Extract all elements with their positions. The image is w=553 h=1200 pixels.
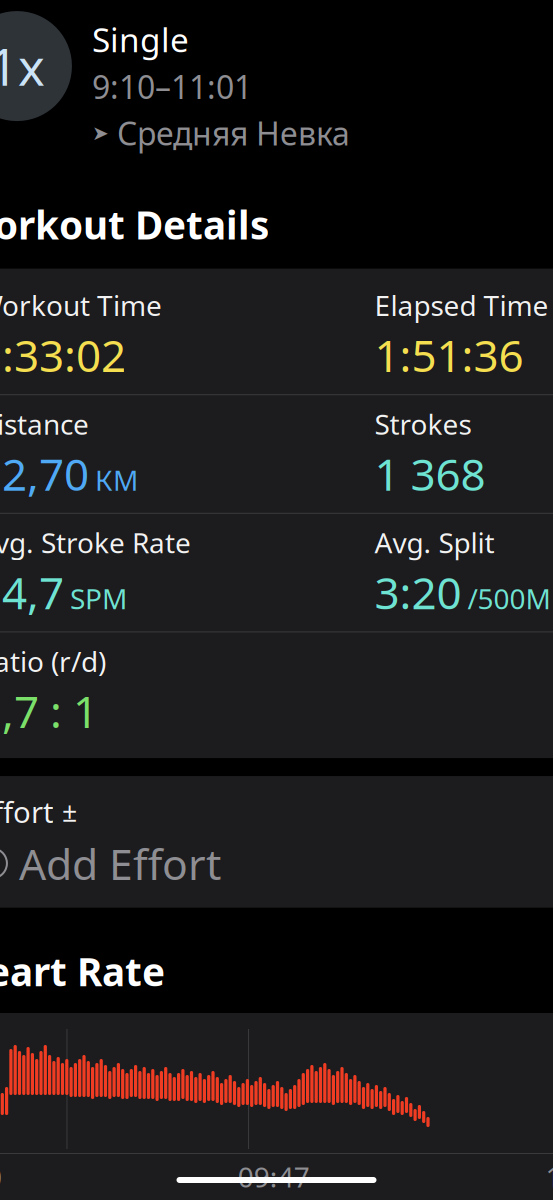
staticText: 09:10 [0, 1158, 2, 1195]
staticText: 14,7 [0, 563, 64, 621]
button[interactable]: Effort [0, 776, 553, 908]
staticText: Workout Time [0, 287, 162, 324]
staticText: 3:20 [374, 563, 461, 621]
staticText: Effort [0, 792, 54, 831]
staticText: Single [92, 17, 189, 61]
staticText: 1:51:36 [374, 326, 523, 384]
staticText: 1 368 [374, 444, 485, 503]
staticText: 09:47 [238, 1158, 310, 1195]
staticText: ➤ [92, 122, 109, 144]
staticText: Ratio (r/d) [0, 642, 106, 680]
staticText: Add Effort [19, 835, 221, 892]
staticText: 1x [0, 32, 45, 100]
staticText: Elapsed Time [374, 287, 548, 324]
staticText: SPM [70, 580, 127, 617]
staticText: 9:10–11:01 [92, 65, 252, 108]
staticText: Strokes [374, 405, 471, 442]
staticText: ± [62, 794, 77, 829]
staticText: Avg. Split [374, 524, 494, 561]
staticText: 1:33:02 [0, 326, 126, 384]
staticText: 1,7 : 1 [0, 682, 98, 740]
staticText: Avg. Stroke Rate [0, 524, 191, 561]
staticText: /500M [467, 580, 550, 617]
staticText: Средняя Невка [117, 112, 350, 154]
staticText: Heart Rate [0, 946, 165, 997]
staticText: КМ [95, 461, 138, 498]
staticText: 12,70 [0, 444, 89, 503]
staticText: Distance [0, 405, 89, 442]
staticText: 10:24 [545, 1158, 553, 1195]
staticText: Workout Details [0, 199, 269, 250]
